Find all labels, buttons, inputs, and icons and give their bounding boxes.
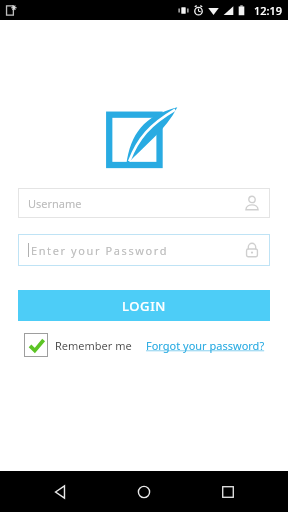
staticText: Forgot your password? [146, 338, 265, 353]
staticText: Username [28, 196, 82, 211]
button[interactable]: Enter your Password [18, 234, 270, 266]
button[interactable]: Recent apps [204, 471, 252, 512]
staticText: Remember me [55, 338, 132, 353]
staticText: LOGIN [122, 297, 167, 315]
staticText: 12:19 [254, 3, 283, 18]
button[interactable]: Username [18, 188, 270, 218]
button[interactable]: Forgot your password? [146, 338, 265, 353]
button[interactable]: Back [36, 471, 84, 512]
staticText: Enter your Password [31, 243, 169, 258]
button[interactable]: LOGIN [18, 290, 270, 321]
button[interactable]: Home [120, 471, 168, 512]
button[interactable]: Remember me [24, 333, 132, 357]
